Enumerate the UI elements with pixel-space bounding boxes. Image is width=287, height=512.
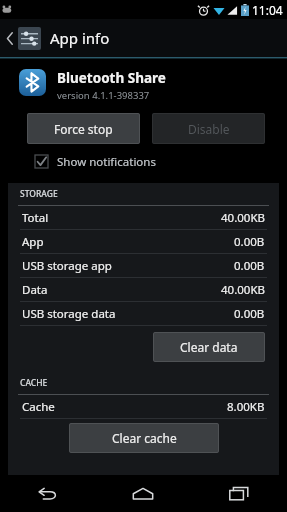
button[interactable]: Up (0, 19, 287, 57)
staticText: Force stop (54, 121, 113, 137)
staticText: CACHE (20, 377, 48, 389)
button[interactable]: Total (8, 206, 279, 230)
staticText: version 4.1.1-398337 (57, 89, 150, 102)
staticText: 8.00KB (227, 399, 265, 415)
button[interactable]: USB storage app (8, 254, 279, 278)
other: Up (6, 32, 14, 45)
button[interactable]: USB storage data (8, 302, 279, 326)
staticText: App (22, 234, 44, 250)
button[interactable]: Back (0, 475, 95, 512)
staticText: Disable (188, 121, 230, 137)
staticText: 0.00B (234, 306, 265, 322)
button[interactable]: Home (95, 475, 191, 512)
button[interactable]: Force stop (27, 113, 140, 144)
button[interactable]: App (8, 230, 279, 254)
staticText: USB storage data (22, 306, 116, 322)
staticText: STORAGE (20, 188, 58, 200)
staticText: App info (50, 28, 110, 48)
button[interactable]: Data (8, 278, 279, 302)
staticText: Bluetooth Share (57, 69, 166, 87)
staticText: 11:04 (252, 2, 283, 18)
staticText: 40.00KB (221, 210, 265, 226)
button[interactable]: Recents (191, 475, 287, 512)
button[interactable]: Clear data (153, 332, 265, 362)
staticText: Show notifications (57, 154, 156, 170)
button[interactable]: Show notifications (35, 151, 287, 172)
button[interactable]: Clear cache (69, 423, 219, 453)
staticText: 0.00B (234, 258, 265, 274)
button[interactable]: Disable (152, 113, 265, 144)
staticText: 40.00KB (221, 282, 265, 298)
staticText: Data (22, 282, 48, 298)
staticText: Clear cache (112, 430, 177, 446)
staticText: USB storage app (22, 258, 112, 274)
staticText: Cache (22, 399, 55, 415)
button[interactable]: Cache (8, 395, 279, 419)
staticText: 0.00B (234, 234, 265, 250)
staticText: Clear data (180, 339, 238, 355)
staticText: Total (22, 210, 49, 226)
